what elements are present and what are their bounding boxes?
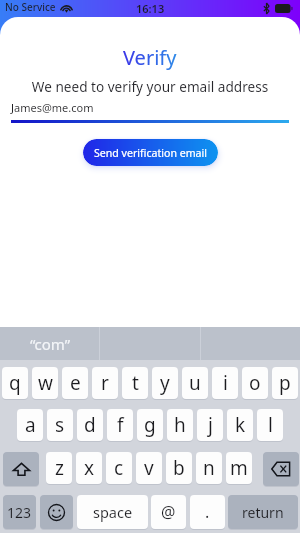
button[interactable]: f [107, 409, 133, 441]
staticText: s [55, 412, 65, 438]
button[interactable]: d [77, 409, 103, 441]
button[interactable]: z [46, 452, 72, 484]
button[interactable]: m [226, 452, 252, 484]
button[interactable]: p [272, 367, 298, 399]
button[interactable]: w [32, 367, 58, 399]
button[interactable]: @ [151, 495, 186, 529]
button[interactable]: i [212, 367, 238, 399]
button[interactable]: a [17, 409, 43, 441]
staticText: j [208, 412, 213, 438]
staticText: Send verification email [94, 146, 208, 160]
staticText: No Service [5, 0, 56, 14]
button[interactable]: h [167, 409, 193, 441]
staticText: . [205, 501, 210, 523]
staticText: w [38, 370, 53, 396]
staticText: d [84, 412, 96, 438]
staticText: 123 [7, 503, 32, 522]
staticText: g [144, 412, 156, 438]
button[interactable]: x [76, 452, 102, 484]
staticText: x [84, 455, 95, 481]
staticText: We need to verify your email address [0, 77, 300, 96]
button[interactable]: j [197, 409, 223, 441]
staticText: e [70, 370, 81, 396]
staticText: Verify [123, 44, 177, 71]
staticText: space [93, 502, 133, 522]
staticText: @ [161, 501, 176, 523]
staticText: u [189, 370, 201, 396]
staticText: m [230, 455, 248, 481]
staticText: a [25, 412, 36, 438]
button[interactable]: space [77, 495, 148, 529]
staticText: p [279, 370, 291, 396]
staticText: o [249, 370, 261, 396]
staticText: James@me.com [11, 100, 94, 115]
button[interactable]: . [190, 495, 225, 529]
staticText: return [242, 503, 284, 522]
button[interactable]: q [2, 367, 28, 399]
button[interactable]: u [182, 367, 208, 399]
button[interactable]: y [152, 367, 178, 399]
staticText: n [203, 455, 215, 481]
button[interactable]: Shift [3, 452, 39, 486]
button[interactable]: e [62, 367, 88, 399]
button[interactable]: 123 [3, 495, 36, 529]
button[interactable]: n [196, 452, 222, 484]
staticText: c [114, 455, 124, 481]
button[interactable]: v [136, 452, 162, 484]
staticText: “com” [30, 334, 71, 354]
button[interactable]: l [257, 409, 283, 441]
staticText: i [223, 370, 228, 396]
button[interactable]: k [227, 409, 253, 441]
button[interactable]: r [92, 367, 118, 399]
button[interactable]: s [47, 409, 73, 441]
staticText: z [55, 455, 64, 481]
staticText: 16:13 [136, 1, 165, 16]
staticText: l [268, 412, 273, 438]
staticText: y [160, 370, 170, 396]
staticText: k [235, 412, 246, 438]
staticText: v [144, 455, 154, 481]
button[interactable]: b [166, 452, 192, 484]
button[interactable]: Emoji [40, 495, 73, 529]
staticText: h [174, 412, 186, 438]
button[interactable]: Backspace [263, 452, 299, 486]
button[interactable]: o [242, 367, 268, 399]
staticText: q [9, 370, 21, 396]
staticText: b [173, 455, 185, 481]
button[interactable]: c [106, 452, 132, 484]
staticText: r [101, 370, 109, 396]
button[interactable]: return [228, 495, 298, 529]
button[interactable]: g [137, 409, 163, 441]
staticText: t [132, 370, 139, 396]
staticText: f [117, 412, 124, 438]
button[interactable]: Send verification email [83, 139, 218, 166]
button[interactable]: t [122, 367, 148, 399]
